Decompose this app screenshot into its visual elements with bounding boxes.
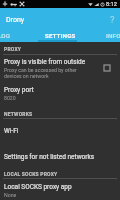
button[interactable]: SETTINGS bbox=[45, 29, 77, 41]
staticText: Drony bbox=[6, 16, 25, 24]
button[interactable]: LOG bbox=[0, 29, 28, 41]
staticText: 8020 bbox=[4, 95, 16, 101]
staticText: ? bbox=[110, 14, 115, 25]
staticText: LOCAL SOCKS PROXY bbox=[4, 171, 58, 177]
staticText: PROXY bbox=[4, 46, 22, 52]
staticText: Settings for not listed networks bbox=[4, 153, 95, 161]
staticText: LOG bbox=[0, 32, 11, 39]
button[interactable]: Help bbox=[104, 11, 120, 27]
staticText: Proxy port bbox=[4, 86, 34, 94]
staticText: NETWORKS bbox=[4, 111, 33, 117]
button[interactable]: INFO bbox=[104, 29, 120, 41]
staticText: SETTINGS bbox=[45, 32, 76, 39]
button[interactable]: Proxy visible from outside checkbox bbox=[94, 55, 120, 81]
staticText: Proxy can be accessed by other bbox=[4, 67, 77, 73]
button[interactable]: Local SOCKS proxy app bbox=[0, 180, 120, 200]
staticText: Wi-Fi bbox=[4, 127, 19, 135]
staticText: Local SOCKS proxy app bbox=[4, 183, 72, 191]
staticText: None bbox=[4, 192, 17, 198]
staticText: INFO bbox=[106, 32, 120, 39]
button[interactable]: Proxy is visible from outside bbox=[0, 55, 120, 81]
staticText: 8:12 bbox=[106, 1, 117, 8]
button[interactable]: Settings for not listed networks bbox=[0, 143, 120, 165]
button[interactable]: Proxy port bbox=[0, 83, 120, 101]
staticText: Proxy is visible from outside bbox=[4, 58, 86, 66]
button[interactable]: Wi-Fi bbox=[0, 122, 120, 140]
staticText: devices on network bbox=[4, 73, 49, 79]
